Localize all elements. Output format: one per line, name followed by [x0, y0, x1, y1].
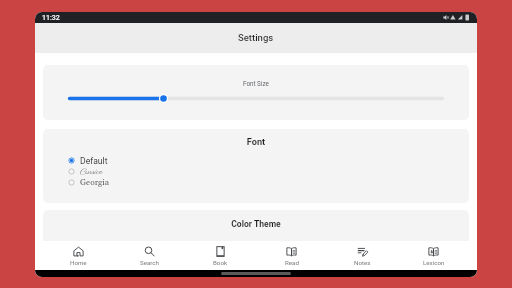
button[interactable]: Georgia — [67, 177, 469, 188]
button[interactable]: Search — [114, 241, 185, 270]
staticText: Read — [285, 259, 299, 266]
staticText: Color Theme — [43, 219, 469, 229]
button[interactable]: Default — [67, 155, 469, 166]
button[interactable]: Lexicon — [398, 241, 469, 270]
button[interactable]: Cursive — [67, 166, 469, 177]
staticText: Default — [80, 156, 108, 166]
button[interactable]: Home — [43, 241, 114, 270]
staticText: Georgia — [80, 177, 110, 188]
staticText: Search — [140, 259, 160, 266]
staticText: Cursive — [80, 166, 103, 177]
staticText: Notes — [354, 259, 371, 266]
staticText: Settings — [238, 32, 274, 43]
button[interactable]: Notes — [327, 241, 398, 270]
staticText: Lexicon — [423, 259, 445, 266]
staticText: Home — [70, 259, 87, 266]
other: Status icons — [443, 13, 470, 22]
staticText: 11:32 — [42, 14, 60, 22]
button[interactable]: Book — [185, 241, 256, 270]
staticText: Book — [213, 259, 228, 266]
staticText: Font — [43, 136, 469, 147]
button[interactable]: Read — [256, 241, 327, 270]
staticText: Font Size — [243, 80, 269, 87]
